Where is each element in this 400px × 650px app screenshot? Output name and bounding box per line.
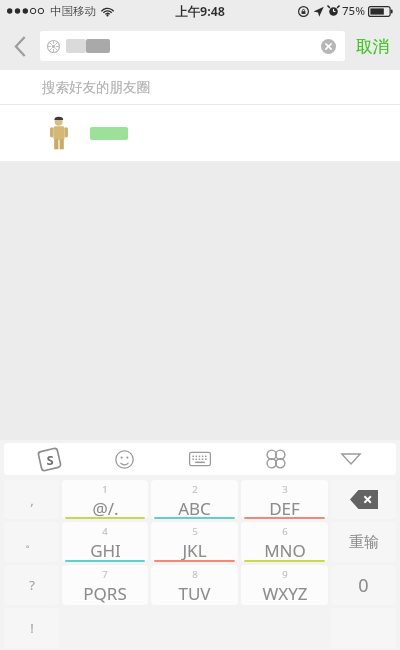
button[interactable]: 4 bbox=[62, 522, 148, 562]
staticText: 1 bbox=[102, 483, 108, 496]
button[interactable]: Redo bbox=[331, 522, 396, 562]
staticText: MNO bbox=[264, 539, 306, 562]
staticText: 取消 bbox=[356, 36, 389, 57]
button[interactable]: Clear text bbox=[40, 31, 345, 61]
button[interactable]: Keyboard layout bbox=[169, 443, 231, 475]
staticText: 5 bbox=[192, 525, 198, 538]
button[interactable]: 9 bbox=[241, 565, 328, 605]
staticText: 2 bbox=[192, 483, 198, 496]
staticText: ! bbox=[30, 619, 34, 637]
button[interactable]: 搜索好友的朋友圈 bbox=[0, 70, 400, 104]
staticText: ? bbox=[29, 576, 35, 594]
button[interactable]: 取消 bbox=[356, 22, 389, 70]
staticText: 75% bbox=[342, 3, 365, 19]
button[interactable]: ? bbox=[4, 565, 59, 605]
staticText: 中国移动 bbox=[50, 4, 96, 18]
staticText: TUV bbox=[178, 582, 211, 605]
staticText: 搜索好友的朋友圈 bbox=[42, 79, 150, 96]
staticText: 3 bbox=[282, 483, 288, 496]
staticText: S bbox=[46, 451, 54, 469]
staticText: 7 bbox=[102, 568, 108, 581]
button[interactable]: 2 bbox=[151, 480, 238, 519]
staticText: GHI bbox=[90, 539, 121, 562]
staticText: 重输 bbox=[349, 533, 379, 552]
button[interactable]: 7 bbox=[62, 565, 148, 605]
staticText: 。 bbox=[25, 534, 38, 550]
staticText: , bbox=[30, 491, 34, 509]
button[interactable]: ! bbox=[4, 608, 59, 648]
button[interactable]: Backspace bbox=[331, 480, 396, 519]
staticText: 0 bbox=[358, 573, 369, 598]
staticText: 8 bbox=[192, 568, 198, 581]
button[interactable] bbox=[0, 105, 400, 161]
button[interactable]: Emoji bbox=[93, 443, 155, 475]
button[interactable]: 5 bbox=[151, 522, 238, 562]
button[interactable]: 8 bbox=[151, 565, 238, 605]
button[interactable]: Zero bbox=[331, 565, 396, 605]
staticText: 9 bbox=[282, 568, 288, 581]
button[interactable]: 3 bbox=[241, 480, 328, 519]
button[interactable]: More tools bbox=[245, 443, 307, 475]
staticText: 4 bbox=[102, 525, 108, 538]
button[interactable]: Clear text bbox=[317, 35, 339, 57]
staticText: ABC bbox=[178, 497, 211, 519]
staticText: 上午9:48 bbox=[175, 3, 225, 20]
staticText: 6 bbox=[282, 525, 288, 538]
button[interactable]: Hide keyboard bbox=[320, 443, 382, 475]
staticText: PQRS bbox=[83, 582, 127, 605]
staticText: WXYZ bbox=[262, 582, 308, 605]
button[interactable]: 6 bbox=[241, 522, 328, 562]
button[interactable]: 1 bbox=[62, 480, 148, 519]
button[interactable]: Sogou input method bbox=[18, 443, 80, 475]
button[interactable]: Back bbox=[0, 22, 40, 70]
staticText: @/. bbox=[92, 497, 119, 519]
staticText: DEF bbox=[269, 497, 300, 519]
staticText: JKL bbox=[182, 539, 207, 562]
